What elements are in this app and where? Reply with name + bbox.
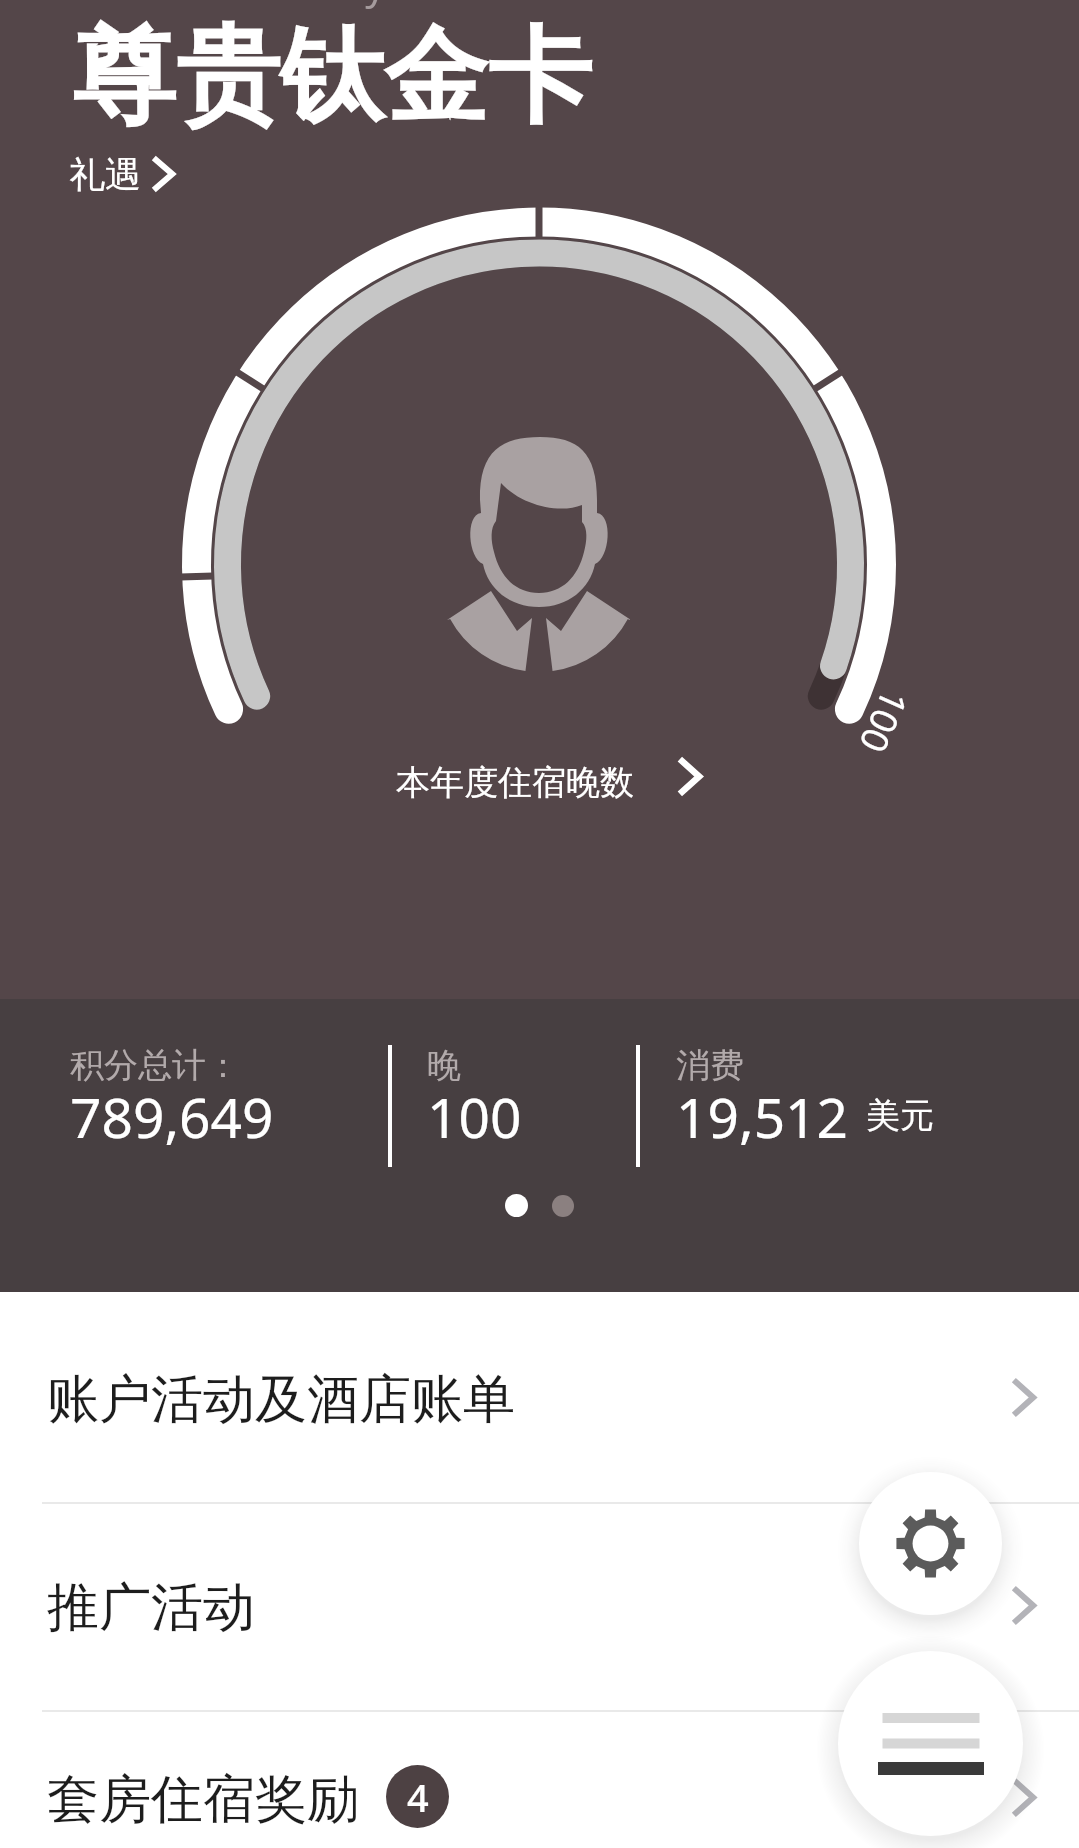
staticText: 尊贵钛金卡 — [72, 12, 592, 143]
button[interactable]: 本年度住宿晚数 — [390, 752, 708, 808]
button[interactable] — [0, 1502, 1079, 1710]
button[interactable]: Menu — [838, 1651, 1023, 1836]
button[interactable]: Settings — [859, 1472, 1002, 1615]
button[interactable]: Page 2 — [552, 1195, 574, 1217]
staticText: 789,649 — [70, 1079, 274, 1154]
button[interactable] — [0, 1292, 1079, 1502]
staticText: 19,512 — [676, 1079, 849, 1154]
staticText: 消费 — [676, 1044, 744, 1087]
staticText: 100 — [427, 1079, 522, 1154]
staticText: 100 — [849, 683, 921, 761]
staticText: Marriott Bonvoy® — [81, 0, 419, 10]
staticText: 积分总计： — [70, 1044, 240, 1087]
staticText: 晚 — [427, 1044, 461, 1087]
staticText: 推广活动 — [47, 1575, 255, 1641]
staticText: 礼遇 — [69, 152, 141, 197]
button[interactable] — [0, 1710, 1079, 1848]
staticText: 美元 — [866, 1094, 934, 1137]
staticText: 套房住宿奖励 — [47, 1767, 359, 1833]
staticText: 本年度住宿晚数 — [396, 761, 634, 804]
button[interactable]: 礼遇 — [62, 144, 184, 202]
staticText: 账户活动及酒店账单 — [47, 1367, 515, 1433]
staticText: 4 — [407, 1771, 429, 1823]
button[interactable]: Page 1 — [505, 1194, 528, 1217]
